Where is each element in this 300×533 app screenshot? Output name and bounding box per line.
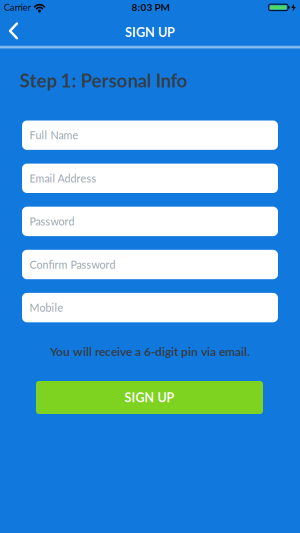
staticText: You will receive a 6-digit pin via email… [50,344,250,358]
button[interactable]: Confirm Password [22,250,278,279]
button[interactable]: SIGN UP [36,381,263,414]
staticText: Full Name [29,129,78,142]
button[interactable]: Email Address [22,164,278,193]
staticText: Carrier [4,2,31,13]
staticText: Email Address [29,172,96,185]
staticText: Step 1: Personal Info [20,69,188,91]
button[interactable]: Full Name [22,121,278,150]
button[interactable]: Mobile [22,293,278,322]
staticText: Mobile [29,301,63,314]
staticText: 8:03 PM [131,1,169,13]
staticText: SIGN UP [125,25,175,40]
staticText: SIGN UP [124,390,174,405]
staticText: Password [29,215,74,228]
button[interactable]: Back [2,19,26,43]
staticText: Confirm Password [29,258,115,271]
button[interactable]: Password [22,207,278,236]
